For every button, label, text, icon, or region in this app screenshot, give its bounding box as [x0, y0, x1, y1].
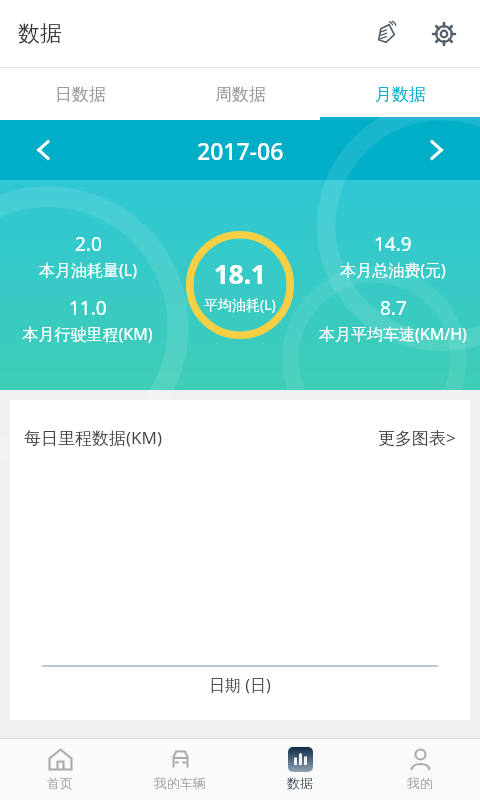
staticText: 日期 (日)	[209, 674, 271, 696]
staticText: 18.1	[214, 256, 266, 291]
staticText: 2.0	[75, 231, 102, 257]
staticText: 周数据	[215, 84, 266, 105]
staticText: 14.9	[374, 231, 412, 257]
button[interactable]: 首页	[0, 738, 120, 800]
staticText: 8.7	[380, 295, 407, 321]
staticText: 平均油耗(L)	[204, 295, 276, 314]
staticText: 本月平均车速(KM/H)	[319, 323, 467, 345]
staticText: 数据	[287, 775, 313, 791]
staticText: 更多图表>	[378, 426, 456, 449]
staticText: 每日里程数据(KM)	[24, 426, 163, 449]
staticText: 月数据	[375, 84, 426, 105]
staticText: 我的车辆	[154, 775, 206, 791]
button[interactable]: 更多图表>	[368, 412, 466, 463]
button[interactable]: Settings	[422, 12, 466, 56]
button[interactable]: 我的车辆	[120, 738, 240, 800]
staticText: 首页	[47, 775, 73, 791]
staticText: 本月总油费(元)	[340, 259, 446, 281]
button[interactable]: 日数据	[0, 68, 160, 120]
button[interactable]: 数据	[240, 738, 360, 800]
button[interactable]: Next month	[414, 128, 458, 172]
button[interactable]: 周数据	[160, 68, 320, 120]
button[interactable]: Previous month	[22, 128, 66, 172]
staticText: 2017-06	[197, 135, 284, 166]
staticText: 数据	[18, 20, 62, 48]
staticText: 我的	[407, 775, 433, 791]
button[interactable]: 我的	[360, 738, 480, 800]
button[interactable]: Remote control	[364, 12, 408, 56]
staticText: 11.0	[69, 295, 107, 321]
staticText: 日数据	[55, 84, 106, 105]
button[interactable]: 月数据	[320, 68, 480, 120]
staticText: 本月行驶里程(KM)	[22, 323, 153, 345]
staticText: 本月油耗量(L)	[39, 259, 137, 281]
